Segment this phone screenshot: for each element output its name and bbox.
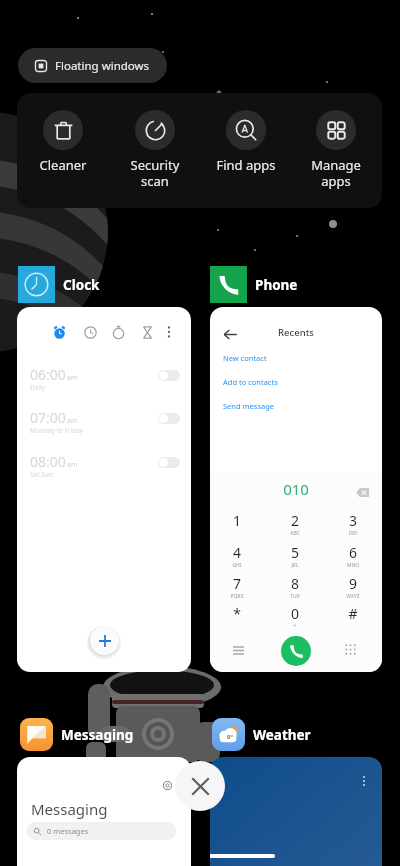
button[interactable]: Toggle alarm [158, 457, 180, 468]
staticText: am [67, 460, 78, 470]
staticText: Monday to Friday [30, 426, 84, 435]
staticText: 7 [222, 574, 252, 593]
button[interactable]: More options [356, 773, 372, 789]
button[interactable]: Back [210, 307, 382, 672]
staticText: 010 [210, 479, 382, 499]
staticText: 2 [280, 511, 310, 530]
button[interactable]: Call [281, 636, 311, 666]
button[interactable]: Add alarm [90, 626, 119, 655]
staticText: GHI [222, 562, 252, 569]
button[interactable]: More options [161, 324, 177, 340]
button[interactable]: Find apps [206, 110, 286, 174]
button[interactable]: 8 [280, 574, 310, 600]
button[interactable]: 0 messages [26, 822, 176, 840]
staticText: Find apps [206, 156, 286, 174]
staticText: MNO [338, 562, 368, 569]
button[interactable]: Send message [223, 401, 275, 411]
button[interactable]: Back [219, 323, 241, 345]
button[interactable]: Manage apps [296, 110, 376, 189]
button[interactable]: New contact [223, 353, 267, 363]
button[interactable]: Security scan [115, 110, 195, 189]
staticText: 8 [280, 574, 310, 593]
button[interactable]: 0 [280, 604, 310, 630]
button[interactable]: Messaging [20, 718, 134, 751]
button[interactable]: 3 [338, 511, 368, 537]
staticText: PQRS [222, 593, 252, 600]
staticText: Messaging [31, 799, 108, 819]
button[interactable]: Add to contacts [223, 377, 278, 387]
staticText: * [222, 604, 252, 623]
staticText: JKL [280, 562, 310, 569]
staticText: Cleaner [23, 156, 103, 174]
staticText: Floating windows [55, 58, 150, 74]
button[interactable]: Menu [233, 645, 244, 656]
staticText: Daily [30, 383, 46, 392]
staticText: 06:00 [30, 365, 66, 384]
staticText: ABC [280, 530, 310, 537]
staticText: 0 [280, 604, 310, 623]
staticText: am [67, 416, 78, 426]
staticText: 6 [338, 543, 368, 562]
button[interactable]: # [338, 604, 368, 623]
staticText: WXYZ [338, 593, 368, 600]
staticText: 08:00 [30, 452, 66, 471]
button[interactable]: Cleaner [23, 110, 103, 174]
staticText: 9 [338, 574, 368, 593]
staticText: Recents [210, 326, 382, 339]
button[interactable]: Backspace [356, 486, 369, 499]
staticText: 4 [222, 543, 252, 562]
staticText: # [338, 604, 368, 623]
button[interactable]: 1 [222, 511, 252, 530]
staticText: TUV [280, 593, 310, 600]
staticText: Messaging [61, 726, 134, 744]
button[interactable]: Floating windows [18, 48, 167, 83]
staticText: 0° [227, 733, 233, 741]
button[interactable]: 6 [338, 543, 368, 569]
staticText: DEF [338, 530, 368, 537]
staticText: Clock [63, 276, 100, 294]
staticText: Security scan [115, 156, 195, 189]
button[interactable]: Clock [18, 266, 100, 303]
button[interactable]: 9 [338, 574, 368, 600]
staticText: Manage apps [296, 156, 376, 189]
staticText: 0 messages [47, 826, 89, 836]
button[interactable]: More options [17, 307, 191, 672]
button[interactable]: Toggle alarm [158, 370, 180, 381]
staticText: 3 [338, 511, 368, 530]
button[interactable]: 08:00 [17, 452, 191, 482]
staticText: + [280, 623, 310, 630]
button[interactable]: * [222, 604, 252, 623]
staticText: 1 [222, 511, 252, 530]
button[interactable]: More options [210, 757, 382, 866]
button[interactable]: 7 [222, 574, 252, 600]
button[interactable]: Close [175, 761, 225, 811]
button[interactable]: 07:00 [17, 408, 191, 438]
staticText: Phone [255, 276, 298, 294]
button[interactable]: Toggle alarm [158, 413, 180, 424]
button[interactable]: Dialpad [345, 644, 356, 655]
button[interactable]: Phone [210, 266, 298, 303]
button[interactable]: 06:00 [17, 365, 191, 395]
button[interactable]: 0° [212, 718, 311, 751]
button[interactable]: Messaging [17, 757, 191, 866]
button[interactable]: 4 [222, 543, 252, 569]
staticText: 07:00 [30, 408, 66, 427]
staticText: 5 [280, 543, 310, 562]
staticText: Sat Sun [30, 470, 53, 479]
button[interactable]: 5 [280, 543, 310, 569]
staticText: Weather [253, 726, 311, 744]
staticText: am [67, 373, 78, 383]
button[interactable]: 2 [280, 511, 310, 537]
